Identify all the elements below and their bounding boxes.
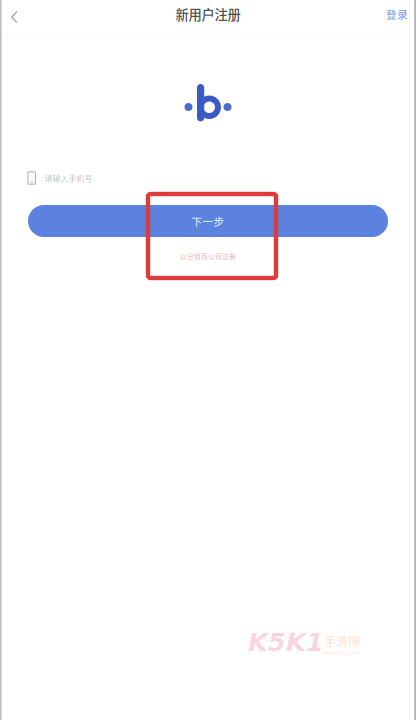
- staticText: www.k5k.com: [324, 650, 360, 656]
- staticText: 以分销商公司注册: [180, 251, 236, 261]
- staticText: 登录: [386, 6, 408, 22]
- button[interactable]: 以分销商公司注册: [180, 250, 236, 262]
- button[interactable]: Back: [0, 0, 34, 28]
- staticText: K5K1: [248, 627, 324, 657]
- staticText: 请输入手机号: [44, 172, 92, 184]
- staticText: 新用户注册: [175, 4, 240, 24]
- staticText: 手游网: [324, 632, 360, 650]
- button[interactable]: 下一步: [28, 205, 388, 237]
- button[interactable]: 登录: [386, 0, 416, 28]
- staticText: 下一步: [191, 213, 224, 229]
